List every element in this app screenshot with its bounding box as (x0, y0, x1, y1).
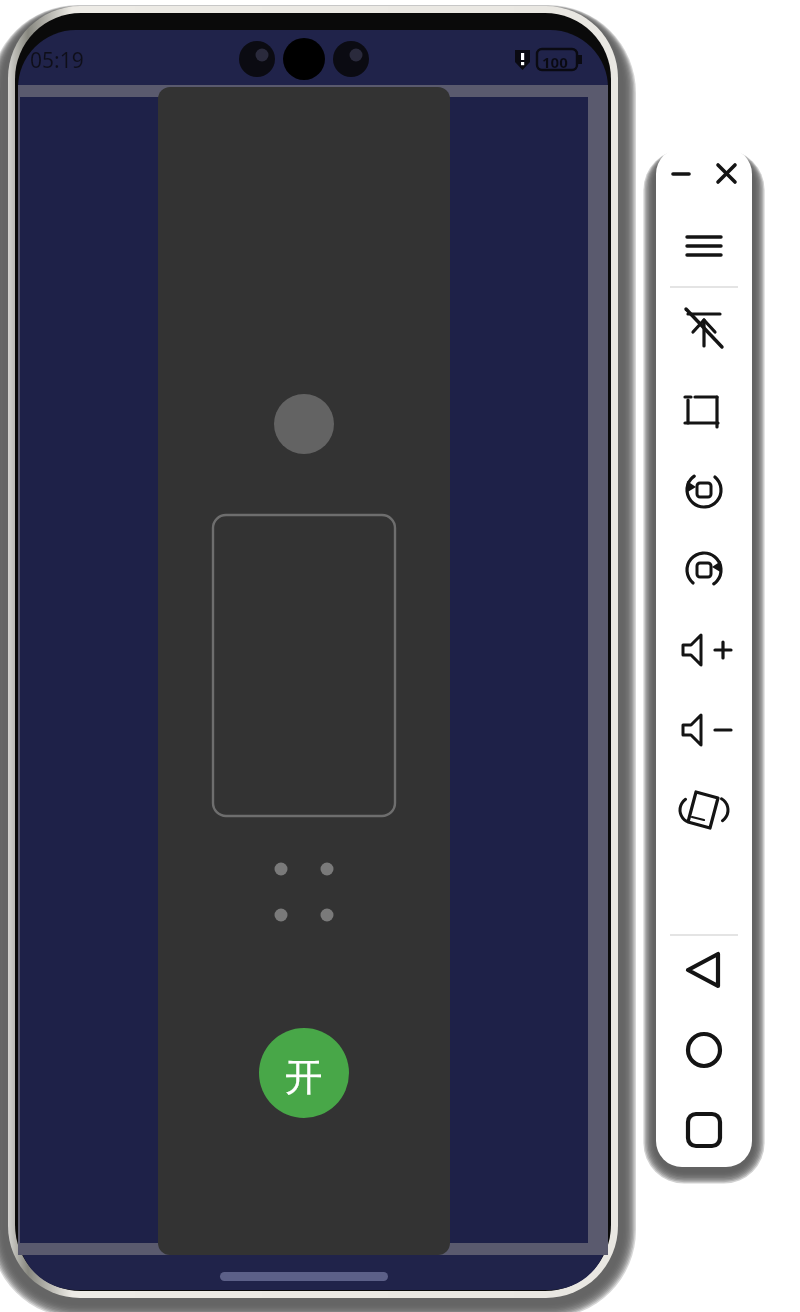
button[interactable]: Volume up (664, 624, 744, 680)
button[interactable]: Rotate left (664, 464, 744, 520)
staticText: 开 (285, 1053, 323, 1101)
button[interactable]: Rotate right (664, 544, 744, 600)
button[interactable]: Home (664, 1022, 744, 1078)
button[interactable]: Crop (664, 384, 744, 440)
button[interactable]: Volume down (664, 704, 744, 760)
button[interactable]: Close (704, 148, 752, 198)
button[interactable]: Disable screenshot (664, 304, 744, 360)
staticText: 05:19 (30, 46, 84, 75)
button[interactable]: Recent apps (664, 1102, 744, 1158)
button[interactable]: Start (259, 1028, 349, 1118)
button[interactable]: Minimize (656, 148, 704, 198)
button[interactable]: Rotate device (664, 784, 744, 840)
button[interactable]: Back (664, 942, 744, 998)
staticText: 100 (542, 52, 568, 72)
button[interactable]: Menu (664, 220, 744, 272)
